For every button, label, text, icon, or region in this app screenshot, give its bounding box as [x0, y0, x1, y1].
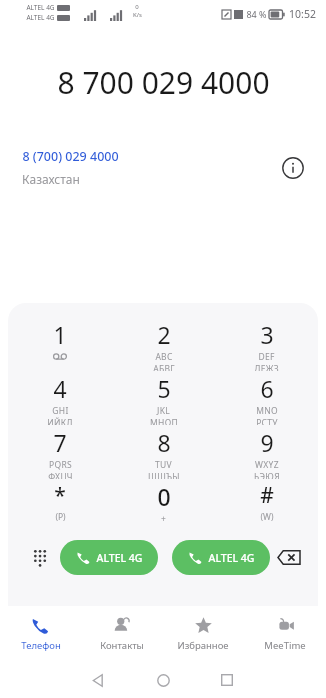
staticText: GHI [52, 405, 69, 417]
staticText: DEF [258, 351, 275, 363]
button[interactable]: Назад [83, 666, 111, 694]
staticText: 8 [157, 427, 171, 458]
staticText: (P) [55, 511, 66, 523]
staticText: 5 [157, 373, 171, 404]
staticText: MNO [256, 405, 278, 417]
staticText: ABC [155, 351, 173, 363]
button[interactable]: MeeTime [244, 606, 326, 662]
staticText: MeeTime [264, 639, 306, 652]
staticText: ALTEL 4G [208, 551, 255, 565]
staticText: ДЕЖЗ [254, 363, 279, 371]
button[interactable]: 0 [112, 479, 215, 529]
staticText: ФХЦЧ [48, 471, 73, 479]
staticText: 4 [53, 373, 67, 404]
button[interactable]: Главный экран [149, 666, 177, 694]
staticText: PQRS [49, 459, 72, 471]
button[interactable]: Удалить [272, 540, 306, 574]
button[interactable]: 2 [112, 317, 215, 371]
staticText: 10:52 [289, 7, 316, 21]
button[interactable]: 1 [8, 317, 112, 371]
staticText: 0 [135, 3, 139, 11]
staticText: + [161, 513, 166, 525]
button[interactable]: # [215, 479, 318, 529]
staticText: K/s [133, 11, 142, 19]
button[interactable]: 3 [215, 317, 318, 371]
staticText: JKL [157, 405, 170, 417]
staticText: WXYZ [255, 459, 279, 471]
button[interactable]: 8 [112, 425, 215, 479]
staticText: ЬЭЮЯ [254, 471, 280, 479]
button[interactable]: Недавние приложения [213, 666, 241, 694]
button[interactable]: Телефон [0, 606, 81, 662]
staticText: 6 [260, 373, 274, 404]
staticText: 8 (700) 029 4000 [22, 148, 119, 165]
staticText: ALTEL 4G [96, 551, 143, 565]
button[interactable]: 4 [8, 371, 112, 425]
staticText: ALTEL 4G [26, 3, 55, 12]
button[interactable]: 9 [215, 425, 318, 479]
staticText: 0 [157, 481, 171, 512]
staticText: Казахстан [22, 171, 80, 187]
staticText: # [260, 481, 274, 510]
staticText: 8 700 029 4000 [57, 62, 270, 103]
button[interactable]: Контакты [81, 606, 162, 662]
button[interactable]: 6 [215, 371, 318, 425]
staticText: 7 [53, 427, 67, 458]
staticText: АБВГ [153, 363, 175, 371]
button[interactable]: * [8, 479, 112, 529]
staticText: ШЩЪЫ [148, 471, 180, 479]
button[interactable]: Избранное [162, 606, 244, 662]
staticText: 3 [260, 319, 274, 350]
staticText: (W) [260, 511, 274, 523]
staticText: ИЙКЛ [47, 417, 73, 425]
staticText: Контакты [100, 639, 144, 652]
staticText: ALTEL 4G [26, 13, 55, 22]
button[interactable]: Клавиатура [26, 542, 56, 572]
staticText: Избранное [177, 639, 229, 652]
staticText: 9 [260, 427, 274, 458]
button[interactable]: ALTEL 4G [60, 540, 158, 575]
staticText: TUV [155, 459, 172, 471]
button[interactable]: 7 [8, 425, 112, 479]
staticText: МНОП [150, 417, 178, 425]
staticText: 1 [53, 319, 67, 350]
button[interactable]: ALTEL 4G [172, 540, 270, 575]
button[interactable]: 5 [112, 371, 215, 425]
staticText: Телефон [21, 639, 61, 652]
staticText: * [54, 481, 66, 510]
staticText: РСТУ [256, 417, 278, 425]
button[interactable]: Информация [280, 155, 306, 181]
staticText: 2 [157, 319, 171, 350]
staticText: 84 % [246, 8, 267, 20]
